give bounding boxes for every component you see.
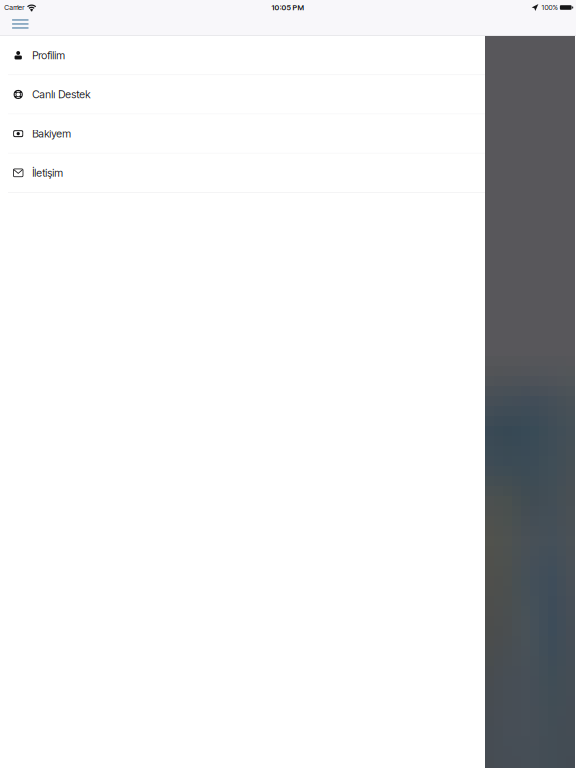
- button[interactable]: Canlı Destek: [0, 75, 485, 114]
- staticText: Canlı Destek: [32, 88, 90, 101]
- staticText: Profilim: [32, 49, 65, 62]
- staticText: 10:05 PM: [271, 3, 304, 12]
- button[interactable]: Bakiyem: [0, 114, 485, 154]
- staticText: Bakiyem: [32, 127, 71, 140]
- button[interactable]: İletişim: [0, 154, 485, 193]
- button[interactable]: Menu: [0, 15, 36, 36]
- staticText: 100%: [541, 3, 557, 12]
- staticText: İletişim: [32, 166, 63, 179]
- button[interactable]: Profilim: [0, 36, 485, 75]
- staticText: Carrier: [4, 3, 24, 12]
